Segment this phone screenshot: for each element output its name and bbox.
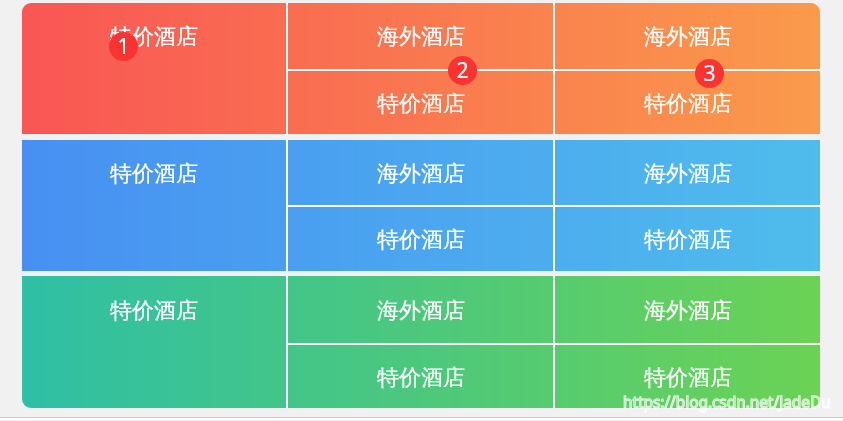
- button[interactable]: 特价酒店: [22, 3, 286, 134]
- button[interactable]: 特价酒店: [22, 276, 286, 408]
- button[interactable]: 特价酒店: [22, 140, 286, 271]
- button[interactable]: Unread count 2: [448, 56, 477, 85]
- button[interactable]: 海外酒店: [555, 3, 820, 69]
- button[interactable]: Unread count 3: [695, 59, 724, 88]
- button[interactable]: Unread count 1: [109, 32, 138, 61]
- staticText: 海外酒店: [377, 297, 465, 325]
- button[interactable]: 特价酒店: [555, 345, 820, 408]
- staticText: 2: [456, 56, 469, 85]
- staticText: https://blog.csdn.net/JadeDu: [623, 391, 831, 412]
- button[interactable]: 特价酒店: [555, 207, 820, 271]
- staticText: 特价酒店: [377, 226, 465, 254]
- button[interactable]: 海外酒店: [288, 3, 553, 69]
- button[interactable]: 特价酒店: [288, 207, 553, 271]
- button[interactable]: 海外酒店: [288, 276, 553, 343]
- button[interactable]: 特价酒店: [555, 71, 820, 134]
- staticText: 1: [117, 32, 130, 61]
- staticText: 特价酒店: [110, 160, 198, 188]
- staticText: 特价酒店: [644, 364, 732, 392]
- staticText: 海外酒店: [377, 23, 465, 51]
- staticText: 特价酒店: [644, 90, 732, 118]
- staticText: 海外酒店: [644, 160, 732, 188]
- staticText: 特价酒店: [644, 226, 732, 254]
- staticText: 3: [703, 59, 716, 88]
- staticText: 海外酒店: [644, 297, 732, 325]
- button[interactable]: 海外酒店: [555, 140, 820, 205]
- button[interactable]: 特价酒店: [288, 71, 553, 134]
- button[interactable]: 特价酒店: [288, 345, 553, 408]
- staticText: 特价酒店: [377, 90, 465, 118]
- staticText: 特价酒店: [377, 364, 465, 392]
- button[interactable]: 海外酒店: [288, 140, 553, 205]
- button[interactable]: 海外酒店: [555, 276, 820, 343]
- staticText: 特价酒店: [110, 23, 198, 51]
- staticText: 海外酒店: [644, 23, 732, 51]
- staticText: 特价酒店: [110, 297, 198, 325]
- staticText: 海外酒店: [377, 160, 465, 188]
